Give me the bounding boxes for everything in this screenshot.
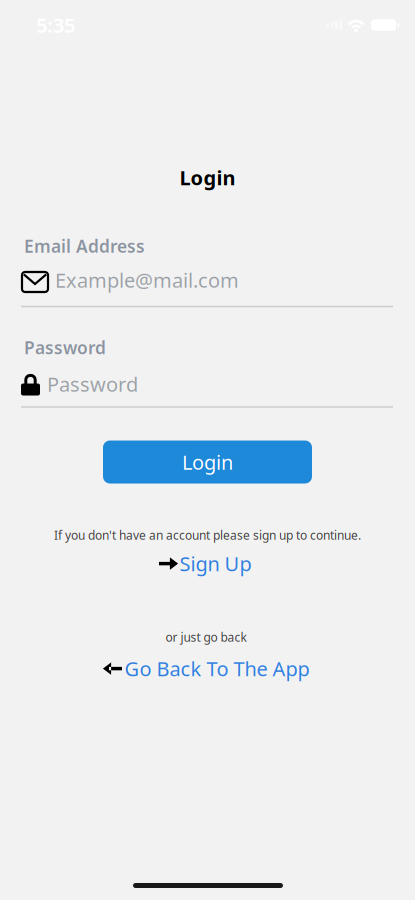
button[interactable]: Example@mail.com bbox=[22, 267, 393, 293]
staticText: Email Address bbox=[24, 234, 145, 257]
staticText: Example@mail.com bbox=[55, 267, 239, 293]
button[interactable]: Go Back To The App bbox=[100, 655, 309, 682]
staticText: 5:35 bbox=[36, 12, 75, 38]
staticText: Login bbox=[182, 449, 233, 475]
staticText: Password bbox=[47, 371, 138, 397]
button[interactable]: Sign Up bbox=[158, 550, 251, 577]
staticText: Sign Up bbox=[179, 550, 251, 577]
button[interactable]: Login bbox=[103, 440, 312, 483]
staticText: Password bbox=[24, 336, 106, 359]
staticText: Login bbox=[179, 164, 235, 191]
staticText: Go Back To The App bbox=[124, 655, 309, 682]
staticText: or just go back bbox=[165, 629, 246, 645]
staticText: If you don't have an account please sign… bbox=[54, 527, 361, 543]
button[interactable]: Password bbox=[21, 371, 394, 397]
